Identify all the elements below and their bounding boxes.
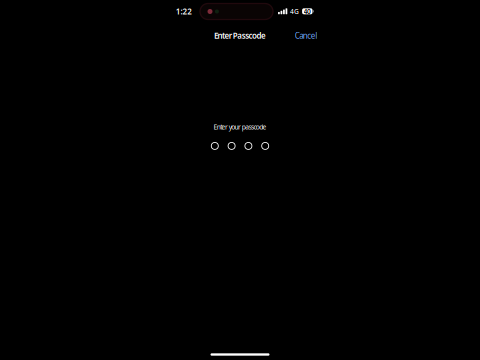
- button[interactable]: Enter your passcode: [200, 120, 280, 151]
- staticText: 40: [304, 7, 311, 16]
- button[interactable]: Cancel: [291, 27, 321, 45]
- staticText: Cancel: [295, 30, 317, 41]
- staticText: Enter your passcode: [213, 123, 267, 131]
- staticText: 4G: [290, 7, 299, 16]
- staticText: 1:22: [176, 6, 192, 17]
- staticText: Enter Passcode: [214, 30, 266, 41]
